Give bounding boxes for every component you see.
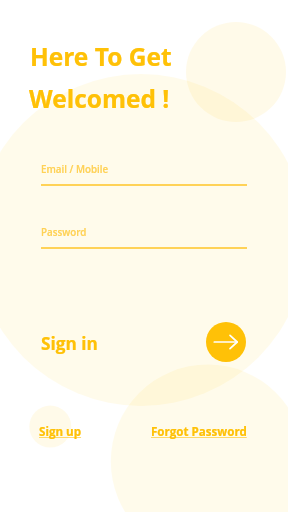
staticText: Sign in [41,332,98,355]
staticText: Welcomed ! [29,82,170,115]
button[interactable]: Forgot Password [151,424,247,440]
button[interactable]: Email / Mobile [41,160,247,189]
button[interactable]: Sign in [206,322,246,362]
button[interactable]: Sign in [41,332,98,355]
staticText: Forgot Password [151,424,247,440]
button[interactable]: Sign up [39,424,82,440]
staticText: Password [41,226,87,239]
staticText: Sign up [39,424,82,440]
button[interactable]: Password [41,223,247,252]
staticText: Email / Mobile [41,163,109,176]
staticText: Here To Get [30,40,172,73]
